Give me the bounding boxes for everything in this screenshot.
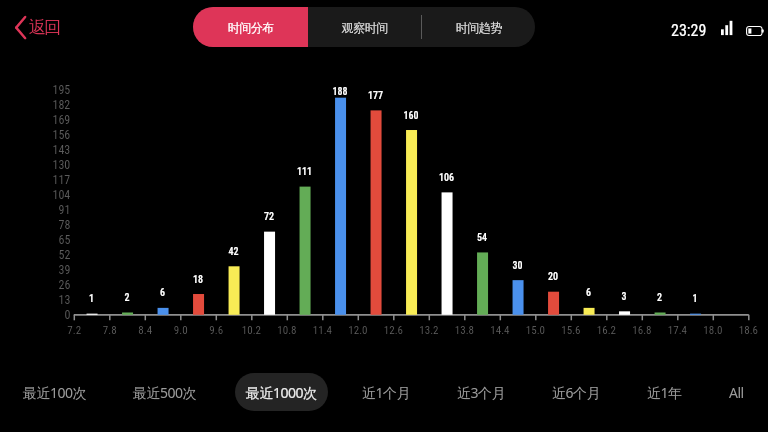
button[interactable]: 近3个月 xyxy=(447,373,515,411)
staticText: 近6个月 xyxy=(552,383,601,402)
other: Battery xyxy=(746,22,764,38)
other: Signal strength xyxy=(721,22,733,38)
staticText: 近1个月 xyxy=(362,383,411,402)
button[interactable]: 最近500次 xyxy=(121,373,209,411)
staticText: 最近100次 xyxy=(23,383,87,402)
button[interactable]: 观察时间 xyxy=(308,7,421,47)
staticText: 最近500次 xyxy=(133,383,197,402)
staticText: 最近1000次 xyxy=(246,383,317,402)
staticText: All xyxy=(729,383,744,402)
button[interactable]: 时间分布 xyxy=(193,7,308,47)
button[interactable]: 时间趋势 xyxy=(422,7,535,47)
button[interactable]: 最近1000次 xyxy=(235,373,328,411)
button[interactable]: 近6个月 xyxy=(542,373,610,411)
staticText: 23:29 xyxy=(671,21,707,40)
staticText: 近3个月 xyxy=(457,383,506,402)
staticText: 近1年 xyxy=(647,383,682,402)
button[interactable]: 返回 xyxy=(10,9,66,45)
staticText: 时间分布 xyxy=(228,20,274,35)
button[interactable]: All xyxy=(714,373,758,411)
button[interactable]: 近1年 xyxy=(636,373,692,411)
button[interactable]: 近1个月 xyxy=(352,373,420,411)
button[interactable]: 最近100次 xyxy=(11,373,99,411)
staticText: 观察时间 xyxy=(342,20,388,35)
staticText: 时间趋势 xyxy=(456,20,502,35)
staticText: 返回 xyxy=(30,17,60,38)
